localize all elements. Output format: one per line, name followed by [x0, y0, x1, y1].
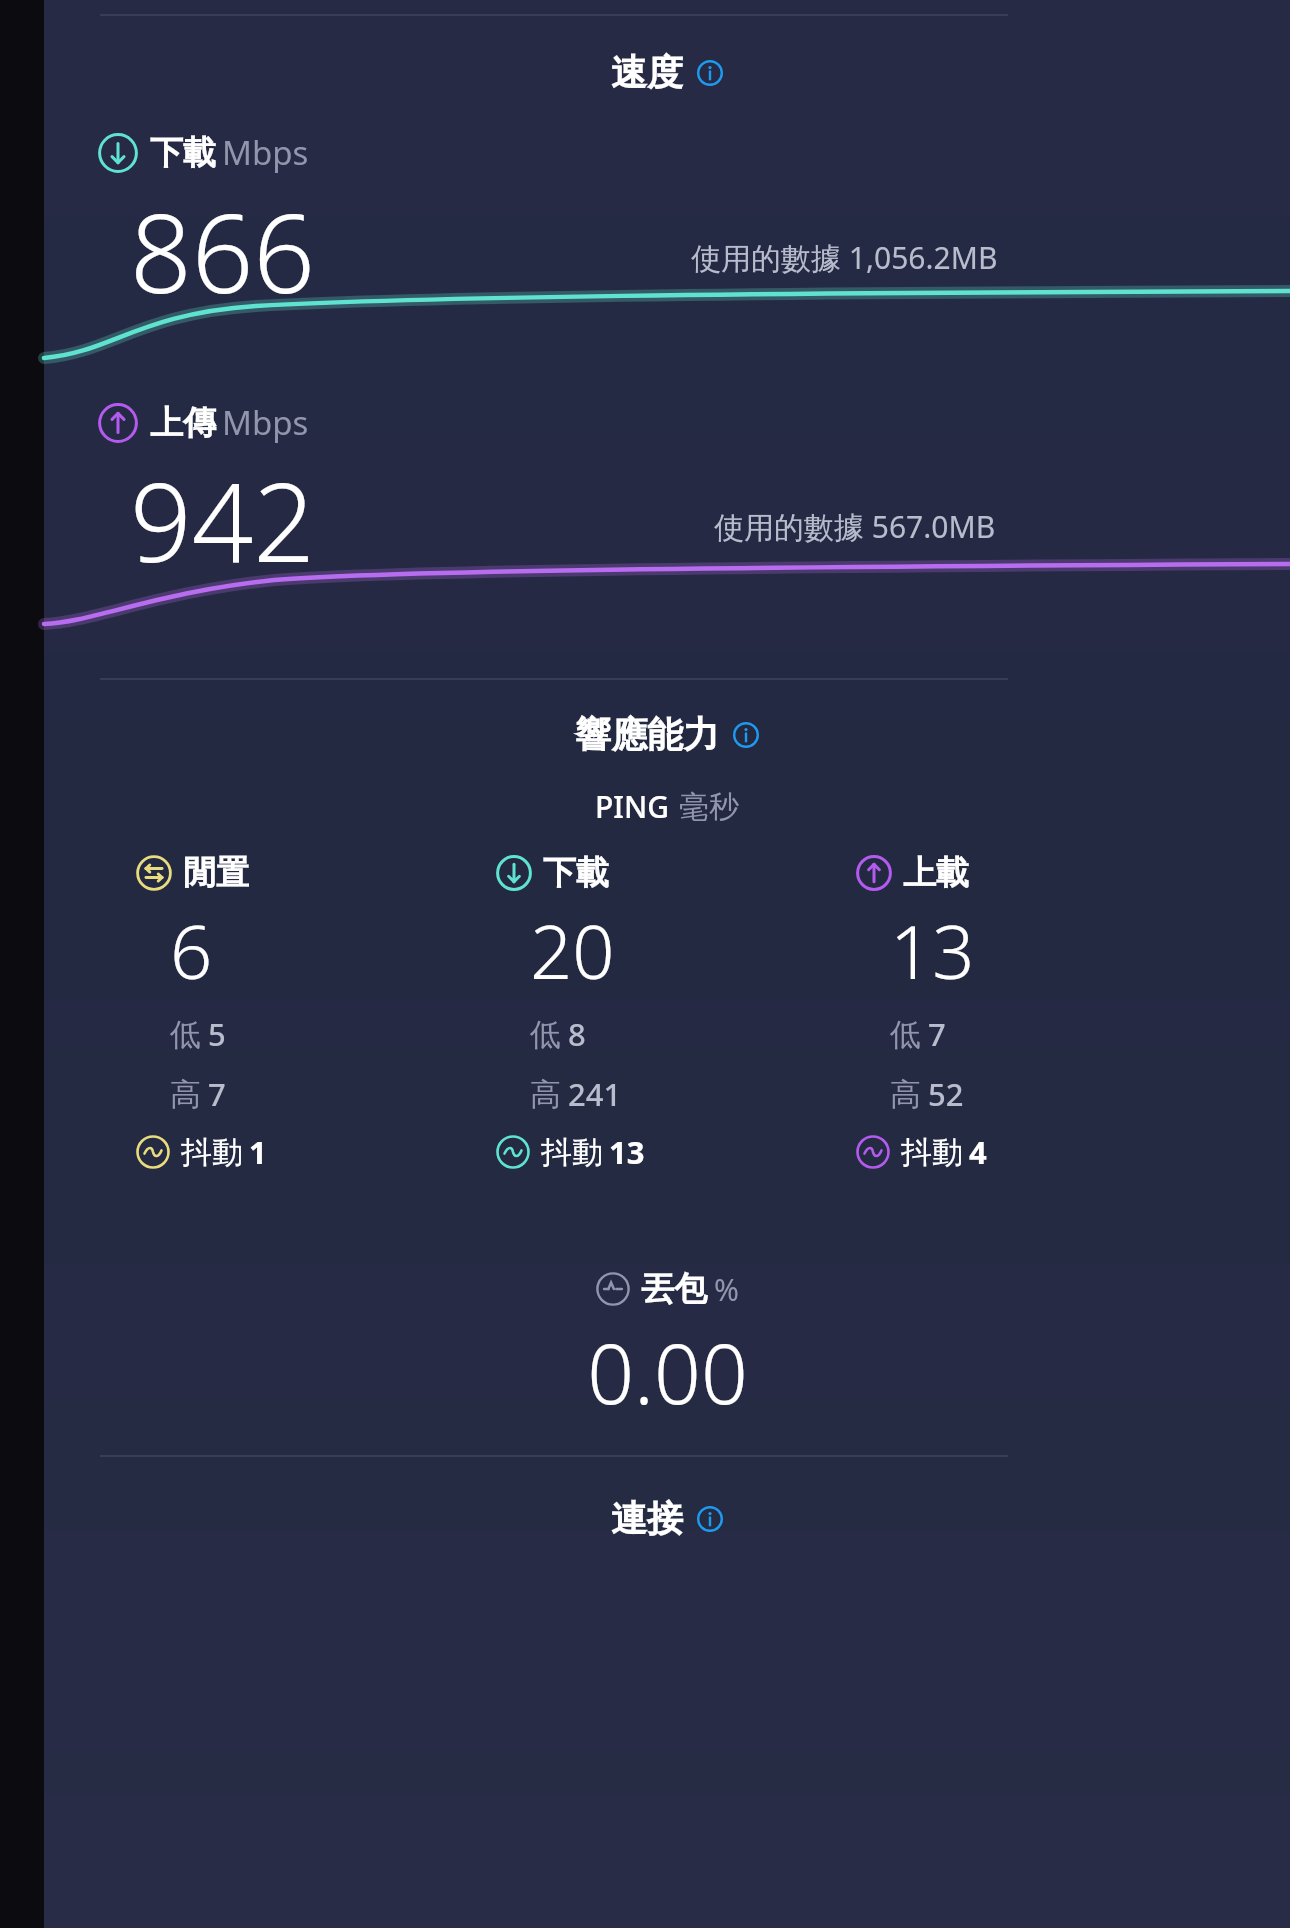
staticText: 抖動 — [181, 1133, 243, 1172]
staticText: 20 — [530, 900, 615, 1001]
staticText: 866 — [130, 178, 316, 325]
button[interactable]: 閒置 — [136, 852, 466, 1173]
staticText: PING — [595, 786, 670, 827]
staticText: 0.00 — [587, 1316, 748, 1428]
staticText: 抖動 — [901, 1133, 963, 1172]
staticText: 響應能力 — [575, 712, 719, 757]
staticText: 4 — [969, 1131, 987, 1173]
staticText: 使用的數據 567.0MB — [714, 506, 996, 547]
staticText: 13 — [609, 1131, 645, 1173]
button[interactable]: Information — [697, 60, 723, 86]
staticText: 速度 — [611, 50, 683, 95]
staticText: 高 — [530, 1075, 561, 1114]
staticText: 毫秒 — [679, 788, 739, 826]
staticText: Mbps — [222, 130, 309, 175]
staticText: 低 — [890, 1015, 921, 1054]
staticText: 5 — [208, 1013, 226, 1055]
staticText: 1 — [249, 1131, 267, 1173]
staticText: 7 — [208, 1073, 226, 1115]
staticText: 241 — [568, 1073, 622, 1115]
staticText: 6 — [170, 900, 213, 1001]
button[interactable]: Information — [733, 722, 759, 748]
staticText: 連接 — [611, 1496, 683, 1541]
button[interactable]: 下載 — [496, 852, 826, 1173]
staticText: 下載 — [543, 852, 609, 894]
button[interactable]: 上載 — [856, 852, 1186, 1173]
staticText: 上傳 — [150, 402, 216, 444]
staticText: 低 — [170, 1015, 201, 1054]
staticText: 高 — [890, 1075, 921, 1114]
staticText: 抖動 — [541, 1133, 603, 1172]
staticText: 942 — [130, 447, 316, 594]
staticText: 丟包 — [641, 1268, 707, 1310]
button[interactable]: 連接 — [44, 1496, 1290, 1541]
staticText: 下載 — [150, 132, 216, 174]
button[interactable]: 響應能力 — [44, 712, 1290, 757]
staticText: 上載 — [903, 852, 969, 894]
staticText: 8 — [568, 1013, 586, 1055]
staticText: 高 — [170, 1075, 201, 1114]
button[interactable]: 速度 — [44, 50, 1290, 95]
button[interactable]: Information — [697, 1506, 723, 1532]
staticText: 使用的數據 1,056.2MB — [691, 237, 998, 278]
staticText: 13 — [890, 900, 975, 1001]
staticText: Mbps — [222, 400, 309, 445]
staticText: 52 — [928, 1073, 964, 1115]
staticText: % — [714, 1269, 739, 1310]
button[interactable]: 丟包 — [44, 1268, 1290, 1310]
staticText: 7 — [928, 1013, 946, 1055]
staticText: 低 — [530, 1015, 561, 1054]
staticText: 閒置 — [183, 852, 249, 894]
